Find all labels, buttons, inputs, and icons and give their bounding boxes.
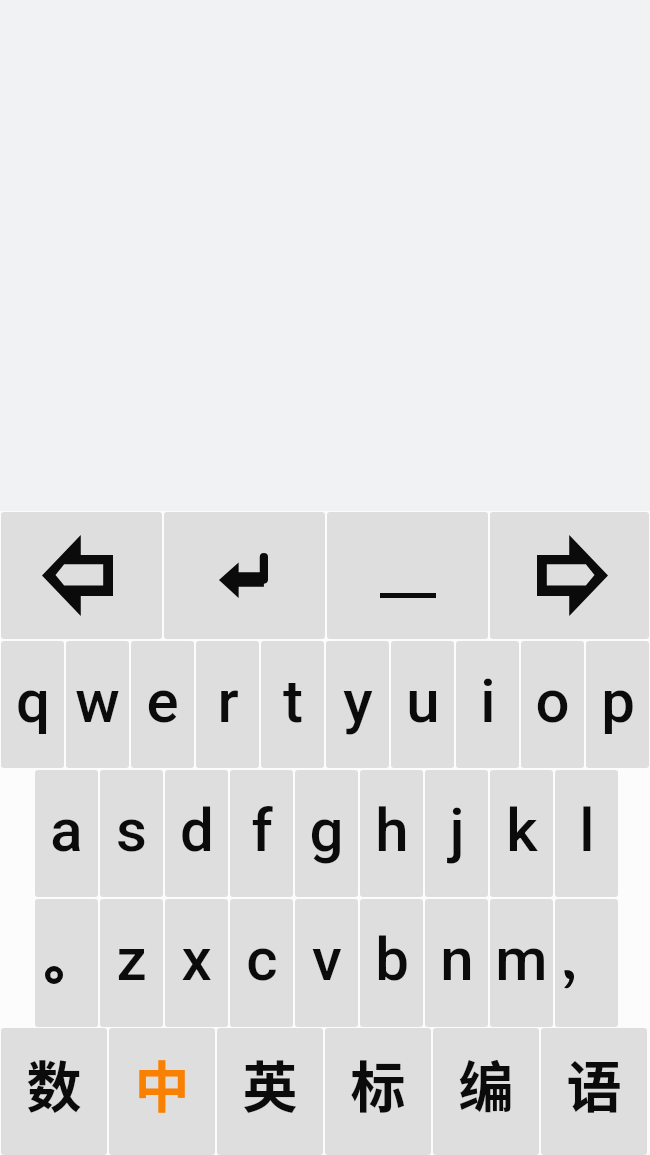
- staticText: n: [440, 924, 474, 994]
- button[interactable]: o: [521, 641, 584, 768]
- staticText: k: [506, 795, 538, 865]
- staticText: w: [75, 666, 120, 736]
- button[interactable]: y: [326, 641, 389, 768]
- button[interactable]: n: [425, 899, 488, 1027]
- button[interactable]: h: [360, 770, 423, 897]
- button[interactable]: d: [165, 770, 228, 897]
- button[interactable]: x: [165, 899, 228, 1027]
- staticText: 中: [134, 1043, 190, 1123]
- button[interactable]: 编: [433, 1028, 539, 1155]
- button[interactable]: t: [261, 641, 324, 768]
- staticText: i: [480, 666, 496, 736]
- staticText: e: [146, 666, 179, 736]
- staticText: 英: [242, 1043, 298, 1123]
- staticText: u: [406, 666, 440, 736]
- staticText: g: [309, 795, 344, 865]
- staticText: 语: [566, 1043, 622, 1123]
- staticText: b: [375, 924, 409, 994]
- staticText: 标: [350, 1043, 406, 1123]
- button[interactable]: e: [131, 641, 194, 768]
- button[interactable]: Full stop: [35, 899, 98, 1027]
- button[interactable]: a: [35, 770, 98, 897]
- button[interactable]: 英: [217, 1028, 323, 1155]
- button[interactable]: w: [66, 641, 129, 768]
- staticText: d: [180, 795, 214, 865]
- button[interactable]: c: [230, 899, 293, 1027]
- button[interactable]: k: [490, 770, 553, 897]
- staticText: s: [116, 795, 147, 865]
- button[interactable]: g: [295, 770, 358, 897]
- staticText: l: [579, 795, 595, 865]
- button[interactable]: u: [391, 641, 454, 768]
- button[interactable]: f: [230, 770, 293, 897]
- button[interactable]: 数: [1, 1028, 107, 1155]
- button[interactable]: b: [360, 899, 423, 1027]
- staticText: p: [601, 666, 635, 736]
- staticText: f: [251, 795, 273, 865]
- button[interactable]: Move cursor right: [490, 512, 649, 639]
- button[interactable]: r: [196, 641, 259, 768]
- button[interactable]: 语: [541, 1028, 647, 1155]
- staticText: 编: [458, 1043, 514, 1123]
- button[interactable]: v: [295, 899, 358, 1027]
- staticText: 数: [26, 1043, 82, 1123]
- staticText: a: [50, 795, 83, 865]
- staticText: q: [16, 666, 50, 736]
- staticText: j: [449, 795, 465, 865]
- staticText: c: [246, 924, 278, 994]
- button[interactable]: Comma: [555, 899, 618, 1027]
- button[interactable]: 标: [325, 1028, 431, 1155]
- staticText: o: [535, 666, 570, 736]
- button[interactable]: m: [490, 899, 553, 1027]
- button[interactable]: Space: [327, 512, 488, 639]
- button[interactable]: Move cursor left: [1, 512, 162, 639]
- button[interactable]: p: [586, 641, 649, 768]
- button[interactable]: i: [456, 641, 519, 768]
- button[interactable]: 中: [109, 1028, 215, 1155]
- button[interactable]: s: [100, 770, 163, 897]
- button[interactable]: Enter: [164, 512, 325, 639]
- staticText: z: [116, 924, 147, 994]
- staticText: v: [312, 924, 342, 994]
- staticText: m: [495, 924, 548, 994]
- button[interactable]: z: [100, 899, 163, 1027]
- button[interactable]: q: [1, 641, 64, 768]
- staticText: t: [283, 666, 303, 736]
- staticText: r: [217, 666, 239, 736]
- button[interactable]: j: [425, 770, 488, 897]
- staticText: x: [181, 924, 212, 994]
- button[interactable]: l: [555, 770, 618, 897]
- staticText: y: [343, 666, 373, 736]
- staticText: h: [375, 795, 409, 865]
